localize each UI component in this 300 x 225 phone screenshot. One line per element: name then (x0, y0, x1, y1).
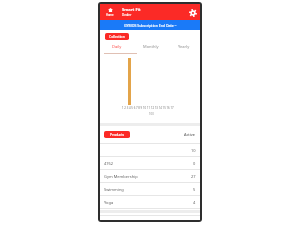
button[interactable]: Yoga (100, 196, 200, 208)
staticText: Collection (109, 34, 125, 39)
staticText: Yearly (178, 44, 190, 49)
staticText: Gym Membership (104, 174, 138, 179)
button[interactable]: Home (106, 8, 114, 17)
button[interactable]: Yearly (167, 42, 200, 50)
staticText: Yoga (104, 200, 114, 205)
button[interactable]: Products (104, 131, 130, 138)
button[interactable]: Settings (188, 8, 198, 18)
staticText: Swimming (104, 187, 124, 192)
staticText: 5 (193, 187, 196, 192)
staticText: 4 (193, 200, 196, 205)
button[interactable]: 10 (100, 144, 200, 156)
staticText: 10 (191, 148, 196, 153)
button[interactable]: GYMOS Subscription End Date ~ (100, 20, 200, 30)
staticText: Daily (112, 44, 122, 49)
staticText: Monthly (143, 44, 159, 49)
button[interactable]: Monthly (134, 42, 167, 50)
staticText: 0 (193, 161, 196, 166)
staticText: 100 (149, 112, 154, 116)
staticText: GYMOS Subscription End Date ~ (124, 23, 177, 28)
staticText: Smart Fit (122, 7, 141, 13)
button[interactable]: Swimming (100, 183, 200, 195)
button[interactable]: Collection (105, 33, 129, 40)
staticText: 1 2 3 4 5 6 7 8 9 10 11 12 13 14 15 16 1… (122, 106, 174, 110)
staticText: Products (110, 132, 125, 137)
staticText: Home (106, 13, 114, 17)
button[interactable]: Daily (100, 42, 134, 50)
button[interactable]: Gym Membership (100, 170, 200, 182)
staticText: 27 (191, 174, 196, 179)
staticText: 4762 (104, 161, 114, 166)
button[interactable]: 4762 (100, 157, 200, 169)
staticText: Dealer (122, 13, 132, 17)
staticText: Active (184, 132, 196, 137)
